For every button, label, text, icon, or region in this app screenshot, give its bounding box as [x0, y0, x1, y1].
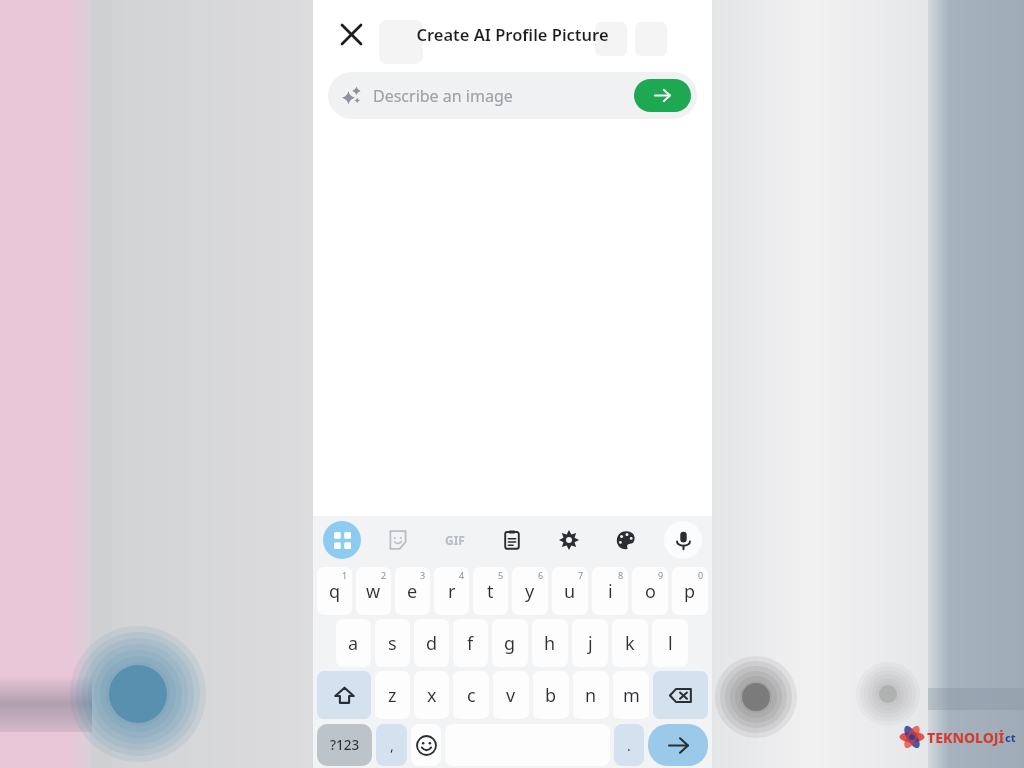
- staticText: n: [585, 683, 597, 708]
- button[interactable]: n: [573, 671, 609, 719]
- button[interactable]: a: [336, 619, 371, 667]
- staticText: q: [329, 579, 341, 604]
- staticText: ?123: [330, 736, 360, 754]
- button[interactable]: o: [632, 567, 668, 615]
- button[interactable]: t: [473, 567, 508, 615]
- staticText: 6: [538, 569, 544, 581]
- staticText: 9: [658, 569, 664, 581]
- staticText: 8: [618, 569, 624, 581]
- button[interactable]: p: [672, 567, 708, 615]
- button[interactable]: h: [532, 619, 568, 667]
- button[interactable]: Send: [634, 79, 691, 112]
- staticText: p: [684, 579, 696, 604]
- button[interactable]: Stickers: [379, 521, 417, 559]
- staticText: r: [448, 579, 456, 604]
- staticText: .: [627, 736, 631, 755]
- staticText: t: [487, 579, 494, 604]
- staticText: c: [467, 683, 476, 708]
- button[interactable]: GIF: [436, 521, 474, 559]
- staticText: ,: [390, 736, 394, 755]
- staticText: d: [426, 631, 438, 656]
- button[interactable]: Clipboard: [493, 521, 531, 559]
- staticText: a: [348, 631, 359, 656]
- staticText: l: [668, 631, 673, 656]
- button[interactable]: v: [493, 671, 529, 719]
- button[interactable]: m: [613, 671, 649, 719]
- staticText: g: [504, 631, 516, 656]
- staticText: f: [467, 631, 474, 656]
- button[interactable]: r: [434, 567, 469, 615]
- staticText: TEKNOLOJİ: [927, 728, 1005, 747]
- button[interactable]: Emoji: [411, 724, 441, 766]
- button[interactable]: Backspace: [653, 671, 708, 719]
- button[interactable]: Settings: [550, 521, 588, 559]
- button[interactable]: ,: [376, 724, 407, 766]
- staticText: e: [407, 579, 418, 604]
- staticText: m: [623, 683, 640, 708]
- button[interactable]: b: [533, 671, 569, 719]
- staticText: 0: [698, 569, 704, 581]
- staticText: ct: [1005, 730, 1016, 745]
- button[interactable]: f: [453, 619, 488, 667]
- staticText: v: [506, 683, 516, 708]
- staticText: Create AI Profile Picture: [416, 23, 609, 45]
- button[interactable]: x: [414, 671, 449, 719]
- staticText: i: [608, 579, 613, 604]
- staticText: h: [544, 631, 556, 656]
- button[interactable]: e: [395, 567, 430, 615]
- button[interactable]: c: [453, 671, 489, 719]
- button[interactable]: Theme: [607, 521, 645, 559]
- staticText: y: [525, 579, 535, 604]
- button[interactable]: Describe an image: [328, 72, 697, 119]
- staticText: 3: [420, 569, 426, 581]
- button[interactable]: j: [572, 619, 608, 667]
- button[interactable]: z: [375, 671, 410, 719]
- button[interactable]: i: [592, 567, 628, 615]
- staticText: u: [564, 579, 576, 604]
- button[interactable]: l: [652, 619, 688, 667]
- button[interactable]: y: [512, 567, 548, 615]
- staticText: x: [427, 683, 437, 708]
- button[interactable]: Voice input: [664, 521, 702, 559]
- button[interactable]: ?123: [317, 724, 372, 766]
- button[interactable]: s: [375, 619, 410, 667]
- staticText: Describe an image: [373, 85, 513, 107]
- staticText: k: [625, 631, 635, 656]
- staticText: 4: [459, 569, 465, 581]
- staticText: b: [545, 683, 557, 708]
- staticText: z: [388, 683, 397, 708]
- button[interactable]: w: [356, 567, 391, 615]
- button[interactable]: g: [492, 619, 528, 667]
- staticText: j: [588, 631, 593, 656]
- staticText: s: [388, 631, 397, 656]
- button[interactable]: .: [614, 724, 644, 766]
- button[interactable]: u: [552, 567, 588, 615]
- staticText: 7: [578, 569, 584, 581]
- button[interactable]: Enter: [648, 724, 708, 766]
- button[interactable]: d: [414, 619, 449, 667]
- staticText: 2: [381, 569, 387, 581]
- button[interactable]: q: [317, 567, 352, 615]
- staticText: 1: [342, 569, 348, 581]
- button[interactable]: Close: [329, 12, 373, 56]
- staticText: GIF: [445, 532, 465, 548]
- button[interactable]: Toolbox: [323, 521, 361, 559]
- button[interactable]: Shift: [317, 671, 371, 719]
- staticText: w: [366, 579, 381, 604]
- staticText: o: [645, 579, 656, 604]
- staticText: 5: [498, 569, 504, 581]
- button[interactable]: k: [612, 619, 648, 667]
